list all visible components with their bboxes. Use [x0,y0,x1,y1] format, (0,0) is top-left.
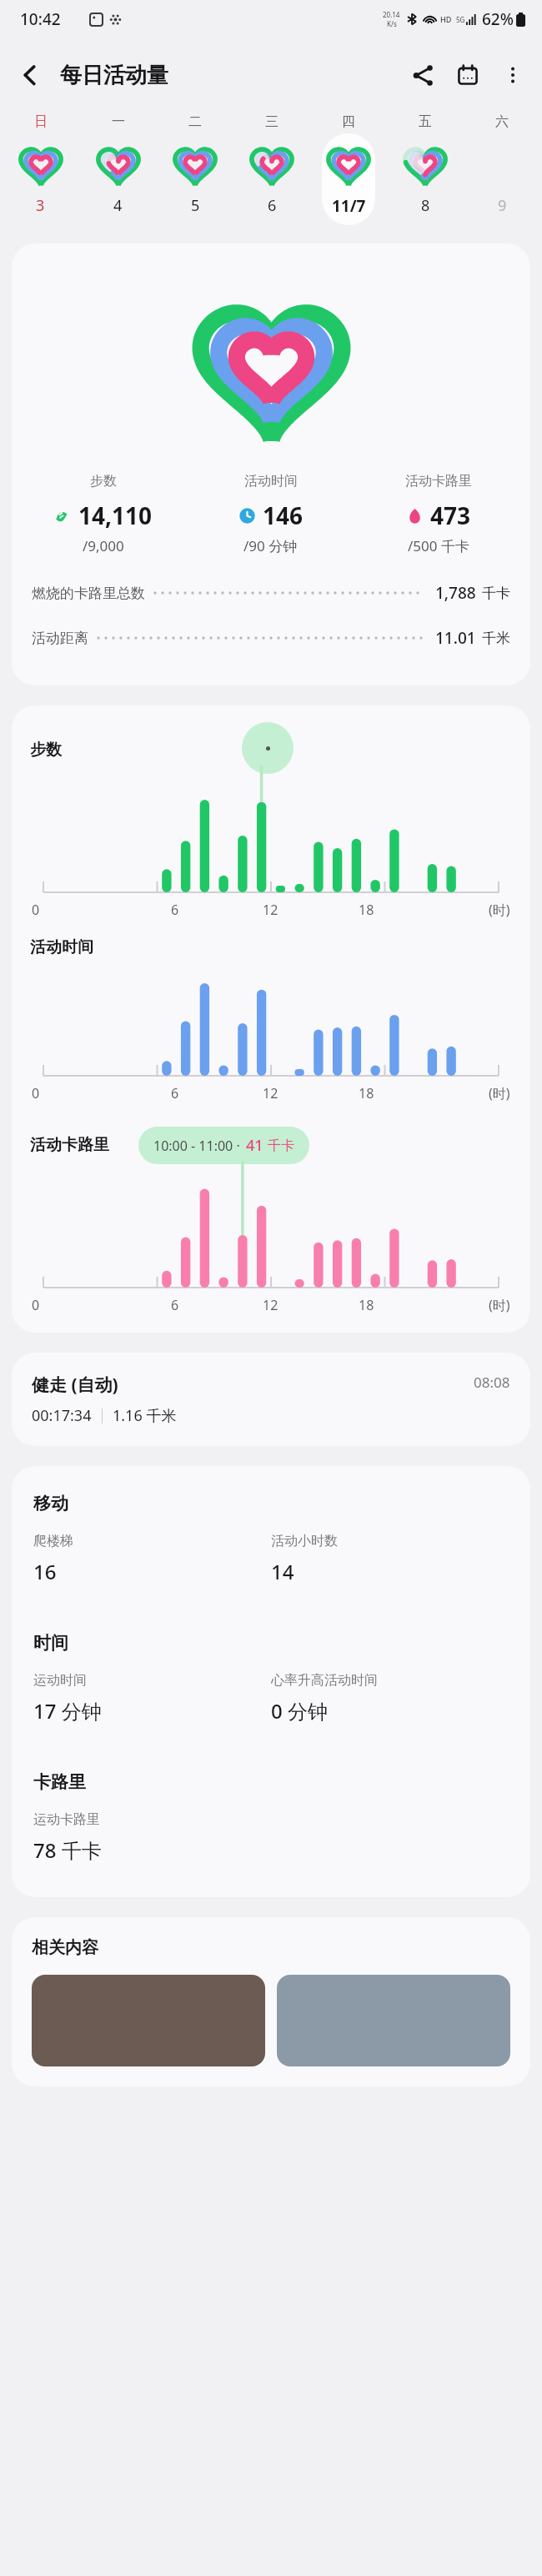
staticText: 6 [171,1084,179,1102]
staticText: 17 分钟 [33,1697,102,1725]
button[interactable]: 二 [157,112,233,235]
staticText: 三 [265,113,279,130]
button[interactable]: 活动距离 [32,615,510,660]
button[interactable]: 四 [310,112,387,235]
staticText: 千卡 [482,585,510,602]
staticText: 146 [263,500,304,531]
button[interactable]: 运动时间 [33,1672,271,1725]
button[interactable]: 一 [79,112,157,235]
staticText: 20.14 [383,10,400,19]
staticText: 1.16 千米 [113,1405,177,1426]
staticText: 每日活动量 [60,62,168,89]
button[interactable]: 爬楼梯 [33,1533,271,1585]
button[interactable]: 活动卡路里 [354,473,522,555]
staticText: (时) [489,1084,510,1102]
staticText: 6 [171,1296,179,1314]
staticText: 二 [188,113,202,130]
staticText: 12 [263,1296,279,1314]
staticText: 11.01 [435,627,476,649]
staticText: /9,000 [83,536,124,555]
staticText: 活动时间 [244,473,298,490]
staticText: HD [440,14,452,24]
button[interactable]: 步数 [20,473,187,555]
staticText: 12 [263,901,279,919]
staticText: 6 [171,901,179,919]
button[interactable]: 心率升高活动时间 [271,1672,509,1725]
staticText: 日 [34,113,48,130]
staticText: 步数 [30,740,62,760]
staticText: 相关内容 [32,1937,98,1958]
staticText: 12 [263,1084,279,1102]
staticText: 9 [498,195,507,216]
staticText: 1,788 [435,582,476,604]
staticText: 0 分钟 [271,1697,328,1725]
staticText: 一 [112,113,125,130]
button[interactable]: 运动卡路里 [33,1811,271,1864]
button[interactable]: 三 [233,112,310,235]
staticText: 0 [32,1084,40,1102]
staticText: 燃烧的卡路里总数 [32,585,145,602]
button[interactable]: More options [490,53,535,98]
staticText: 0 [32,1296,40,1314]
staticText: 18 [359,1084,374,1102]
staticText: 14,110 [78,500,153,531]
button[interactable]: 健走 (自动) [12,1353,530,1446]
staticText: 六 [495,113,509,130]
button[interactable]: 六 [464,112,540,235]
staticText: 78 千卡 [33,1836,102,1864]
staticText: 健走 (自动) [32,1373,118,1397]
staticText: 运动时间 [33,1672,87,1689]
staticText: 千米 [482,630,510,647]
staticText: 活动时间 [30,937,93,957]
staticText: 四 [342,113,355,130]
staticText: 爬楼梯 [33,1533,73,1549]
staticText: 5 [191,195,200,216]
staticText: 运动卡路里 [33,1811,100,1828]
button[interactable]: 日 [2,112,79,235]
staticText: /90 分钟 [243,536,298,555]
staticText: 14 [271,1558,294,1585]
staticText: 11/7 [332,195,366,217]
staticText: 心率升高活动时间 [271,1672,378,1689]
staticText: 18 [359,901,374,919]
staticText: 00:17:34 [32,1405,92,1426]
button[interactable]: Share [400,53,445,98]
staticText: 步数 [90,473,117,490]
staticText: 16 [33,1558,57,1585]
staticText: /500 千卡 [408,536,469,555]
staticText: 4 [113,195,123,216]
button[interactable]: 五 [387,112,464,235]
staticText: 10:42 [20,8,61,30]
staticText: 62% [482,8,514,30]
button[interactable]: 活动小时数 [271,1533,509,1585]
staticText: 5G [456,15,465,24]
button[interactable]: 燃烧的卡路里总数 [32,570,510,615]
button[interactable] [277,1975,510,2066]
staticText: (时) [489,901,510,919]
button[interactable]: Back [8,53,52,97]
staticText: 时间 [33,1632,68,1654]
button[interactable] [32,1975,265,2066]
staticText: 473 [430,500,471,531]
staticText: 10:00 - 11:00 · [153,1137,240,1155]
staticText: 活动卡路里 [30,1135,109,1155]
staticText: 08:08 [474,1373,510,1392]
staticText: 18 [359,1296,374,1314]
button[interactable]: 活动时间 [187,473,354,555]
staticText: 0 [32,901,40,919]
staticText: 千卡 [268,1137,294,1154]
staticText: 6 [268,195,277,216]
button[interactable]: Calendar [445,53,490,98]
staticText: 活动小时数 [271,1533,338,1549]
staticText: 41 [246,1135,263,1156]
staticText: (时) [489,1296,510,1314]
staticText: 活动距离 [32,630,88,647]
staticText: 卡路里 [33,1771,86,1793]
staticText: 活动卡路里 [405,473,472,490]
staticText: 8 [421,195,430,216]
staticText: 移动 [33,1493,68,1514]
staticText: 五 [419,113,432,130]
staticText: 3 [36,195,45,216]
staticText: K/s [387,19,397,28]
